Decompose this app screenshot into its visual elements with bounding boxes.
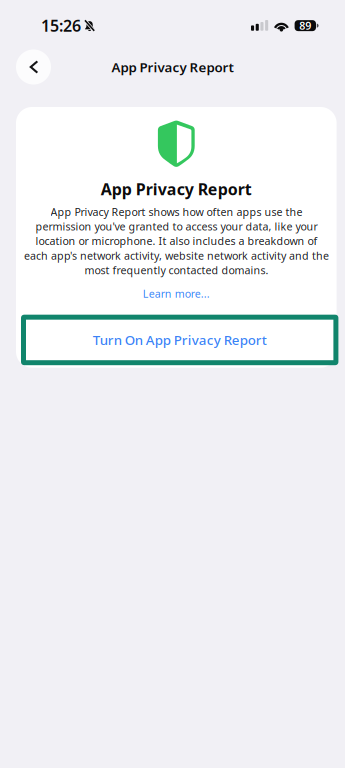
staticText: App Privacy Report shows how often apps … [24,205,329,277]
staticText: Turn On App Privacy Report [93,331,267,349]
staticText: 89 [299,18,311,33]
staticText: 15:26 [41,15,81,36]
button[interactable]: Turn On App Privacy Report [23,317,336,363]
staticText: App Privacy Report [111,58,233,76]
button[interactable]: Learn more... [16,277,337,310]
button[interactable]: Back [16,49,51,84]
staticText: Learn more... [143,287,210,301]
staticText: App Privacy Report [101,178,252,200]
